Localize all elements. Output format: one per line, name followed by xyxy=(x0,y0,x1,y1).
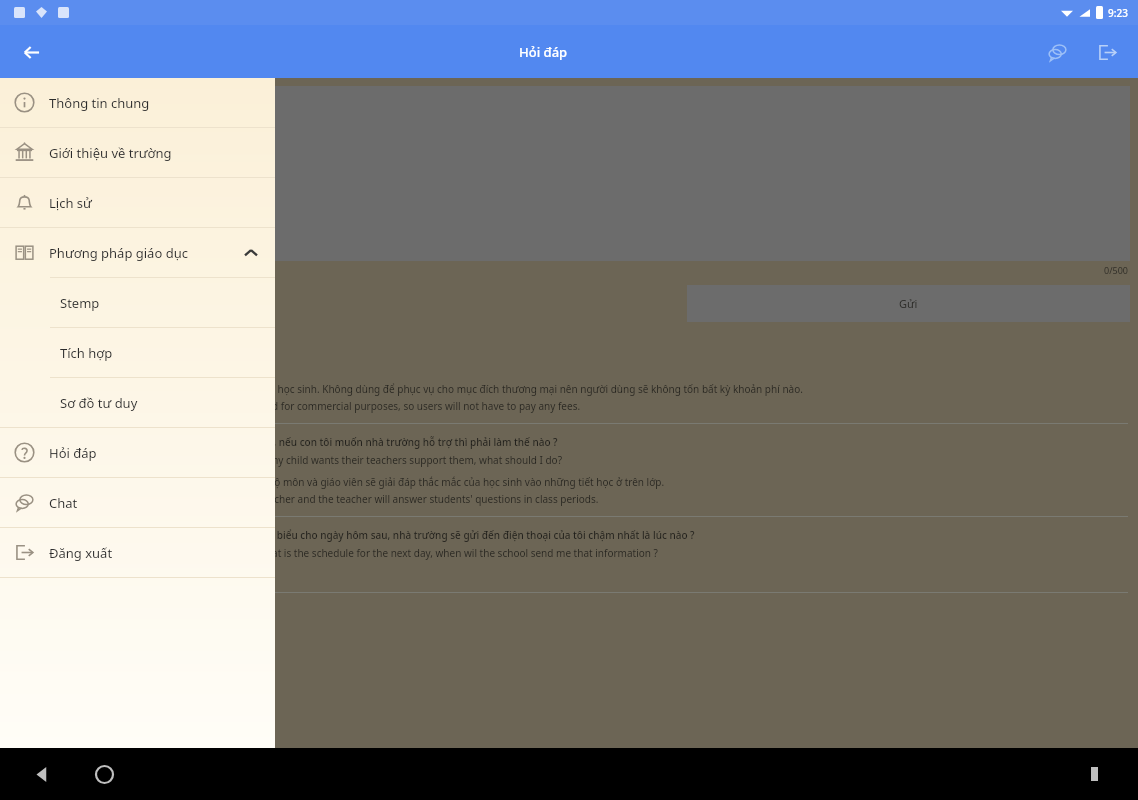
staticText: Nếu buổi chiều nhà trường thay đổi hoặc … xyxy=(6,528,1128,542)
button[interactable]: Đăng xuất xyxy=(0,528,275,577)
button[interactable]: Thông tin chung xyxy=(0,78,275,127)
staticText: Parents can give their feedback directly… xyxy=(6,492,1128,506)
staticText: Chat xyxy=(49,494,261,512)
staticText: Gửi xyxy=(899,296,918,311)
button[interactable]: Tích hợp xyxy=(0,328,275,377)
button[interactable]: Lịch sử xyxy=(0,178,275,227)
staticText: Con tôi thấy các bài tập môn Toán, Lý, H… xyxy=(6,435,1128,449)
staticText: Do I have to pay a fee to use this appli… xyxy=(6,360,1128,374)
staticText: Phương pháp giáo dục xyxy=(49,244,241,262)
staticText: Stemp xyxy=(60,294,261,312)
staticText: Tích hợp xyxy=(60,344,261,362)
staticText: Lịch sử xyxy=(49,194,261,212)
button[interactable]: Phương pháp giáo dục xyxy=(0,228,275,277)
other: Collapse xyxy=(241,243,261,263)
button[interactable]: Chat xyxy=(1036,31,1078,73)
button[interactable]: Stemp xyxy=(0,278,275,327)
button[interactable]: Hỏi đáp xyxy=(0,428,275,477)
staticText: Quý phụ huynh có thể phản ánh trực tiếp … xyxy=(6,475,1128,489)
staticText: Nhà trường sẽ gửi thông tin đến quý phụ … xyxy=(6,568,1128,582)
staticText: If the school changes or replaces in the… xyxy=(6,546,1128,560)
staticText: Hỏi đáp xyxy=(519,43,568,61)
staticText: Tôi có phải đóng phí khi sử dụng ứng dụn… xyxy=(6,342,1128,356)
staticText: 0/500 xyxy=(1104,264,1128,276)
staticText: Đăng xuất xyxy=(49,544,261,562)
staticText: My child finds math, physics, and chemis… xyxy=(6,453,1128,467)
button[interactable]: Back xyxy=(10,31,52,73)
button[interactable]: Sơ đồ tư duy xyxy=(0,378,275,427)
staticText: Hỏi đáp xyxy=(49,444,261,462)
button[interactable]: Home xyxy=(84,754,124,794)
button[interactable]: Chat xyxy=(0,478,275,527)
staticText: Thông tin chung xyxy=(49,94,261,112)
staticText: 9:23 xyxy=(1108,6,1128,20)
staticText: Ứng dụng này được xây dựng nhằm phục vụ … xyxy=(6,382,1128,396)
staticText: Giới thiệu về trường xyxy=(49,144,261,162)
button[interactable]: Back xyxy=(22,754,62,794)
button[interactable]: Log out xyxy=(1086,31,1128,73)
staticText: This application is built to serve stude… xyxy=(6,399,1128,413)
staticText: Sơ đồ tư duy xyxy=(60,394,261,412)
button[interactable]: Recent apps xyxy=(1074,754,1114,794)
button[interactable]: Giới thiệu về trường xyxy=(0,128,275,177)
